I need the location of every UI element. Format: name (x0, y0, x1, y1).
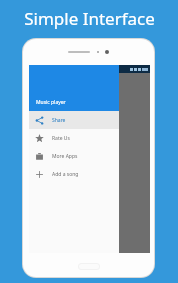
button[interactable]: Share (29, 111, 119, 129)
button[interactable]: Home (78, 263, 100, 270)
staticText: Rate Us (52, 135, 70, 142)
button[interactable]: Add a song (29, 165, 119, 183)
staticText: Music player (36, 99, 66, 106)
button[interactable]: More Apps (29, 147, 119, 165)
staticText: Simple Interface (24, 7, 155, 30)
staticText: Add a song (52, 171, 79, 178)
button[interactable]: Music player (29, 65, 119, 111)
staticText: Share (52, 117, 66, 124)
button[interactable]: Rate Us (29, 129, 119, 147)
staticText: More Apps (52, 153, 78, 160)
